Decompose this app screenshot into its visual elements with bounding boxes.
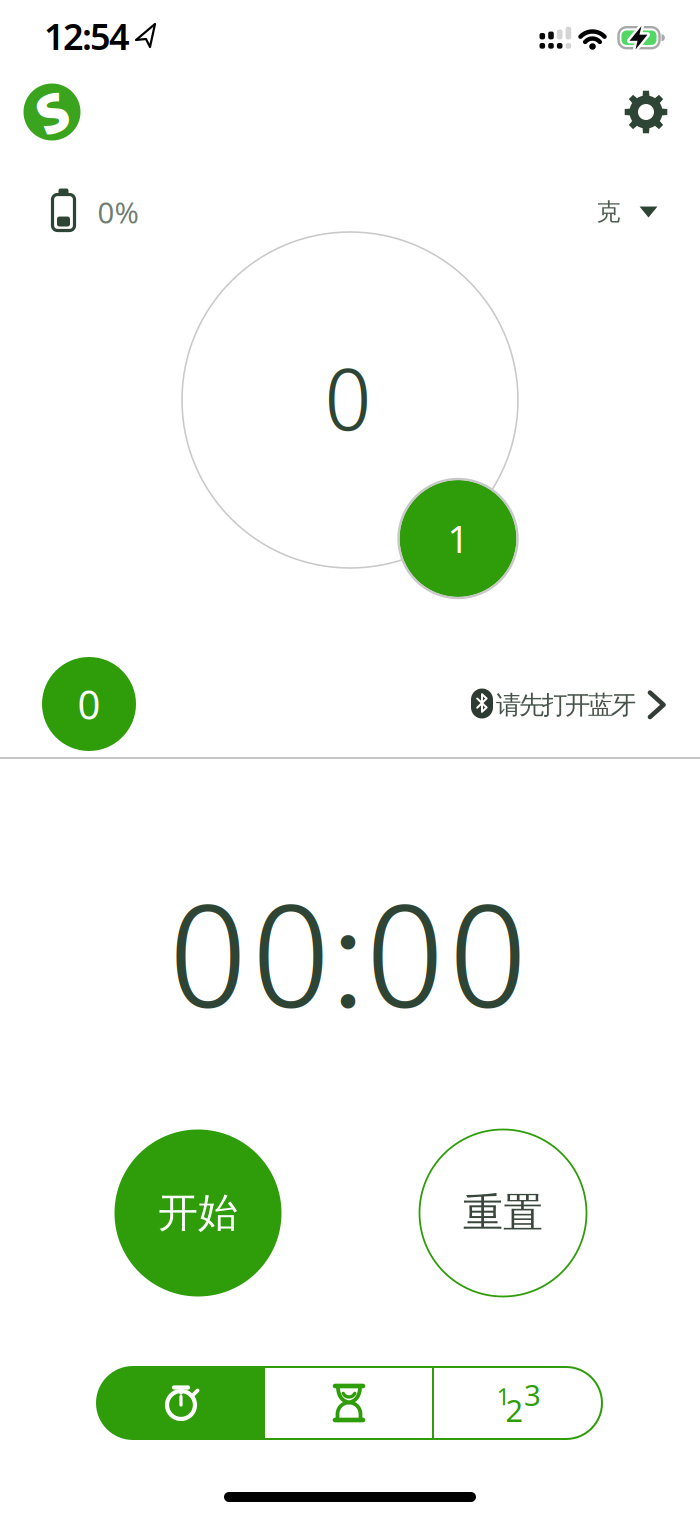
staticText: 2 xyxy=(505,1390,523,1430)
button[interactable]: 重置 xyxy=(419,1129,586,1296)
staticText: 重置 xyxy=(463,1188,543,1237)
staticText: 0 xyxy=(323,346,373,454)
button[interactable]: 开始 xyxy=(114,1129,281,1296)
staticText: 3 xyxy=(524,1375,541,1414)
button[interactable]: 克 xyxy=(596,197,657,227)
staticText: S xyxy=(36,77,67,147)
staticText: 1 xyxy=(447,514,468,563)
button[interactable]: 请先打开蓝牙 xyxy=(466,673,678,737)
staticText: 开始 xyxy=(158,1188,238,1237)
staticText: 1 xyxy=(496,1380,510,1412)
button[interactable]: Countdown timer xyxy=(265,1367,433,1439)
staticText: 00:00 xyxy=(166,866,529,1046)
staticText: 克 xyxy=(596,197,620,227)
staticText: 0 xyxy=(77,677,100,730)
staticText: 请先打开蓝牙 xyxy=(496,689,636,720)
button[interactable]: Settings xyxy=(616,82,676,142)
staticText: 0% xyxy=(97,192,138,231)
button[interactable]: Counter xyxy=(433,1367,602,1439)
button[interactable]: Stopwatch xyxy=(97,1367,265,1439)
staticText: 12:54 xyxy=(44,12,130,60)
